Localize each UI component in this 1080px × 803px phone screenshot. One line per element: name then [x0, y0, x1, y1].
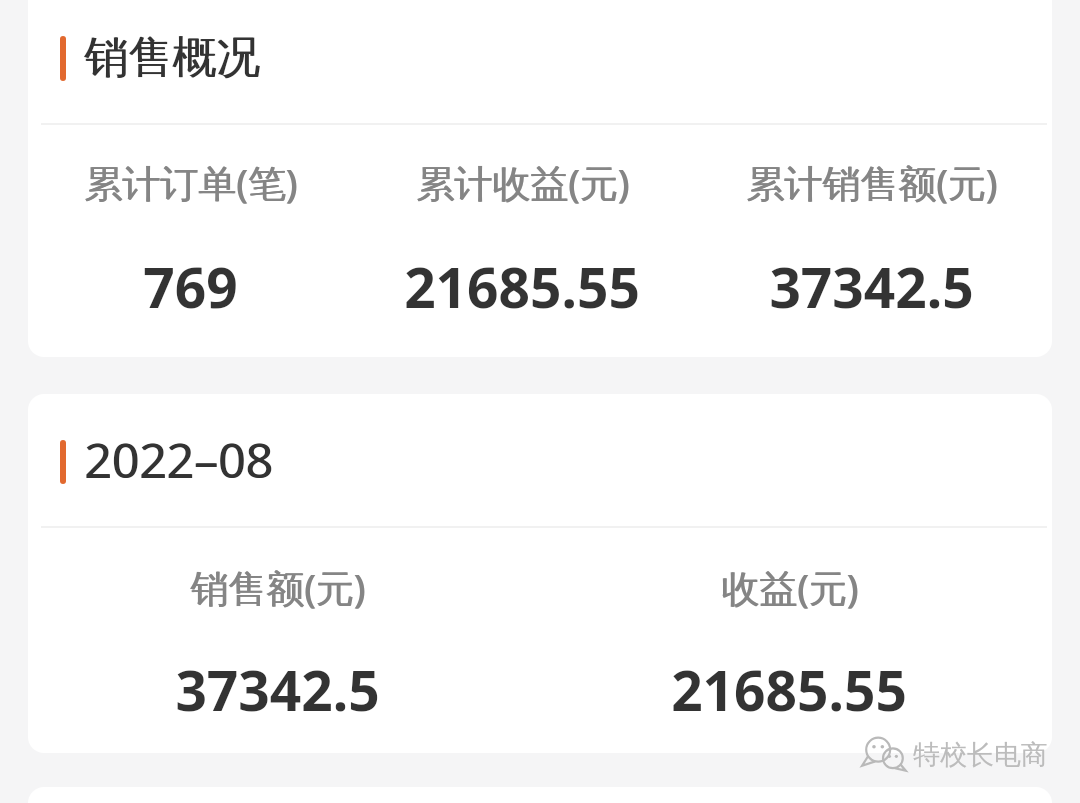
staticText: 收益(元): [721, 561, 858, 613]
staticText: 销售概况: [84, 30, 260, 85]
staticText: 2022–08: [84, 427, 273, 492]
staticText: 累计收益(元): [417, 156, 630, 208]
staticText: 21685.55: [404, 249, 640, 324]
other: WeChat: [863, 736, 909, 772]
button[interactable]: [28, 36, 1052, 81]
staticText: 销售额(元): [191, 561, 366, 613]
staticText: 累计销售额(元): [747, 156, 998, 208]
staticText: 37342.5: [175, 652, 380, 727]
button[interactable]: [28, 440, 1052, 484]
staticText: 21685.55: [671, 652, 907, 727]
staticText: 2022–08: [85, 427, 274, 492]
staticText: 37342.5: [769, 249, 974, 324]
staticText: 收益(元): [722, 561, 859, 613]
staticText: 累计订单(笔): [85, 156, 298, 208]
staticText: 769: [143, 249, 238, 324]
button[interactable]: 收益(元): [533, 561, 1045, 727]
staticText: 累计订单(笔): [84, 156, 297, 208]
button[interactable]: 销售额(元): [28, 561, 533, 727]
staticText: 销售概况: [85, 30, 261, 85]
staticText: 销售额(元): [190, 561, 365, 613]
button[interactable]: 累计销售额(元): [746, 156, 997, 324]
button[interactable]: 累计收益(元): [404, 156, 640, 324]
staticText: 累计收益(元): [416, 156, 629, 208]
button[interactable]: 累计订单(笔): [84, 156, 297, 324]
staticText: 特校长电商: [913, 738, 1048, 772]
staticText: 累计销售额(元): [746, 156, 997, 208]
